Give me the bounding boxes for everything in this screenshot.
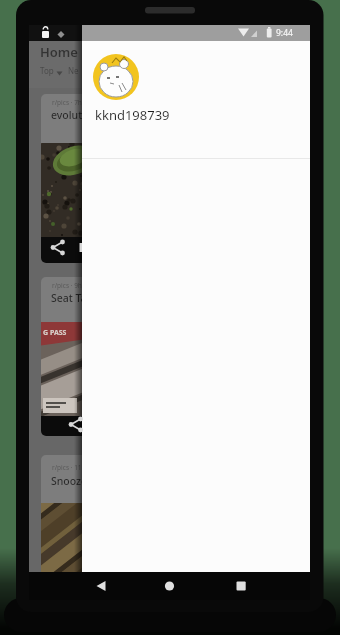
staticText: r/pics · 9h · u/to — [52, 281, 100, 290]
button[interactable] — [41, 237, 271, 263]
staticText: Top — [40, 65, 54, 76]
staticText: Ne — [68, 65, 79, 76]
button[interactable] — [41, 416, 271, 436]
button[interactable]: kknd198739 — [95, 106, 170, 124]
button[interactable] — [29, 572, 310, 600]
staticText: 9:44 — [276, 27, 293, 39]
staticText: Seat Taken — [51, 291, 106, 305]
staticText: G PASS — [43, 328, 67, 338]
staticText: Snoozefest — [51, 474, 107, 488]
staticText: Home — [40, 43, 78, 61]
button[interactable]: r/pics · 9h · u/to — [41, 277, 271, 436]
button[interactable]: r/pics · 11h · u/s — [41, 455, 271, 572]
staticText: evolution — [51, 108, 99, 122]
button[interactable] — [93, 54, 139, 100]
staticText: r/pics · 7h · u/ay — [52, 98, 101, 107]
button[interactable]: r/pics · 7h · u/ay — [41, 94, 271, 263]
staticText: r/pics · 11h · u/s — [52, 463, 101, 472]
